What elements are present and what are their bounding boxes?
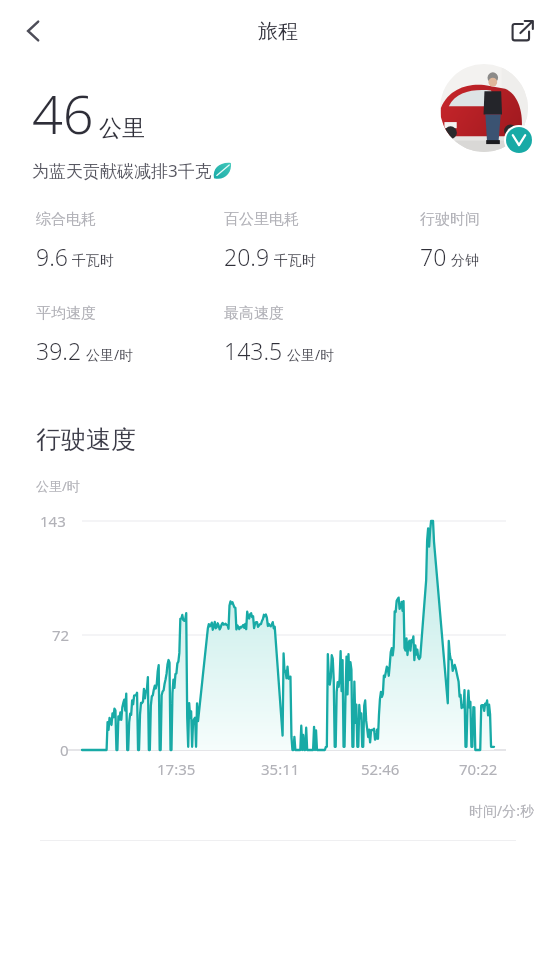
staticText: 143 — [40, 511, 66, 531]
staticText: 公里/时 — [86, 345, 134, 364]
staticText: 旅程 — [258, 19, 298, 44]
staticText: 为蓝天贡献碳减排3千克 — [32, 159, 212, 182]
staticText: 时间/分:秒 — [469, 801, 534, 820]
staticText: 公里/时 — [36, 477, 80, 495]
staticText: 9.6 — [36, 241, 68, 272]
staticText: 综合电耗 — [36, 210, 96, 229]
staticText: 千瓦时 — [72, 252, 114, 270]
staticText: 行驶时间 — [420, 210, 480, 229]
staticText: 46 — [32, 76, 94, 150]
staticText: 39.2 — [36, 335, 82, 366]
staticText: 17:35 — [157, 759, 196, 779]
staticText: 35:11 — [261, 759, 300, 779]
staticText: 平均速度 — [36, 304, 96, 323]
staticText: 最高速度 — [224, 304, 284, 323]
staticText: 百公里电耗 — [224, 210, 299, 229]
staticText: 分钟 — [451, 252, 479, 270]
staticText: 公里/时 — [287, 345, 335, 364]
staticText: 行驶速度 — [36, 424, 136, 455]
staticText: 0 — [60, 740, 69, 757]
staticText: 70:22 — [459, 759, 498, 779]
staticText: 公里 — [99, 114, 145, 143]
button[interactable]: Profile photo — [440, 64, 528, 152]
staticText: 72 — [52, 625, 70, 645]
button[interactable]: Back — [6, 4, 60, 58]
staticText: 52:46 — [361, 759, 400, 779]
button[interactable]: Share — [494, 4, 548, 58]
staticText: 143.5 — [224, 335, 283, 366]
staticText: 20.9 — [224, 241, 270, 272]
staticText: 千瓦时 — [274, 252, 316, 270]
staticText: 70 — [420, 241, 447, 272]
